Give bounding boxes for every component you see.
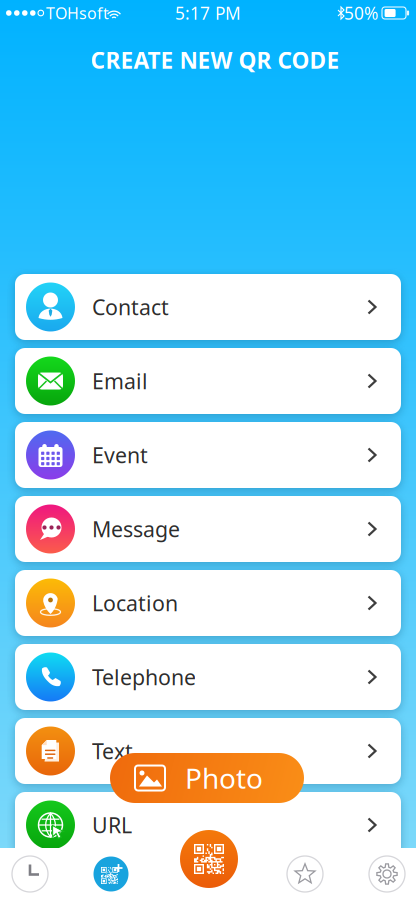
staticText: Text	[92, 737, 133, 765]
staticText: 5:17 PM	[175, 1, 241, 24]
staticText: Contact	[92, 293, 169, 321]
button[interactable]: Contact	[15, 274, 401, 340]
staticText: 50%	[344, 1, 378, 24]
staticText: Telephone	[92, 663, 196, 691]
button[interactable]: Photo	[110, 753, 304, 803]
button[interactable]: Create QR code	[180, 830, 238, 888]
button[interactable]: History	[3, 848, 57, 900]
button[interactable]: Email	[15, 348, 401, 414]
staticText: Message	[92, 515, 180, 543]
staticText: Photo	[185, 759, 263, 797]
button[interactable]: URL	[15, 792, 401, 858]
staticText: Location	[92, 589, 178, 617]
staticText: CREATE NEW QR CODE	[90, 45, 339, 75]
button[interactable]: Favourites	[278, 848, 332, 900]
button[interactable]: Event	[15, 422, 401, 488]
button[interactable]: Message	[15, 496, 401, 562]
staticText: Email	[92, 367, 148, 395]
staticText: URL	[92, 811, 132, 839]
button[interactable]: Scan QR code	[84, 848, 138, 900]
button[interactable]: Settings	[360, 848, 414, 900]
staticText: TOHsoft	[46, 2, 109, 24]
button[interactable]: Location	[15, 570, 401, 636]
button[interactable]: Telephone	[15, 644, 401, 710]
button[interactable]: Text	[15, 718, 401, 784]
staticText: Event	[92, 441, 148, 469]
